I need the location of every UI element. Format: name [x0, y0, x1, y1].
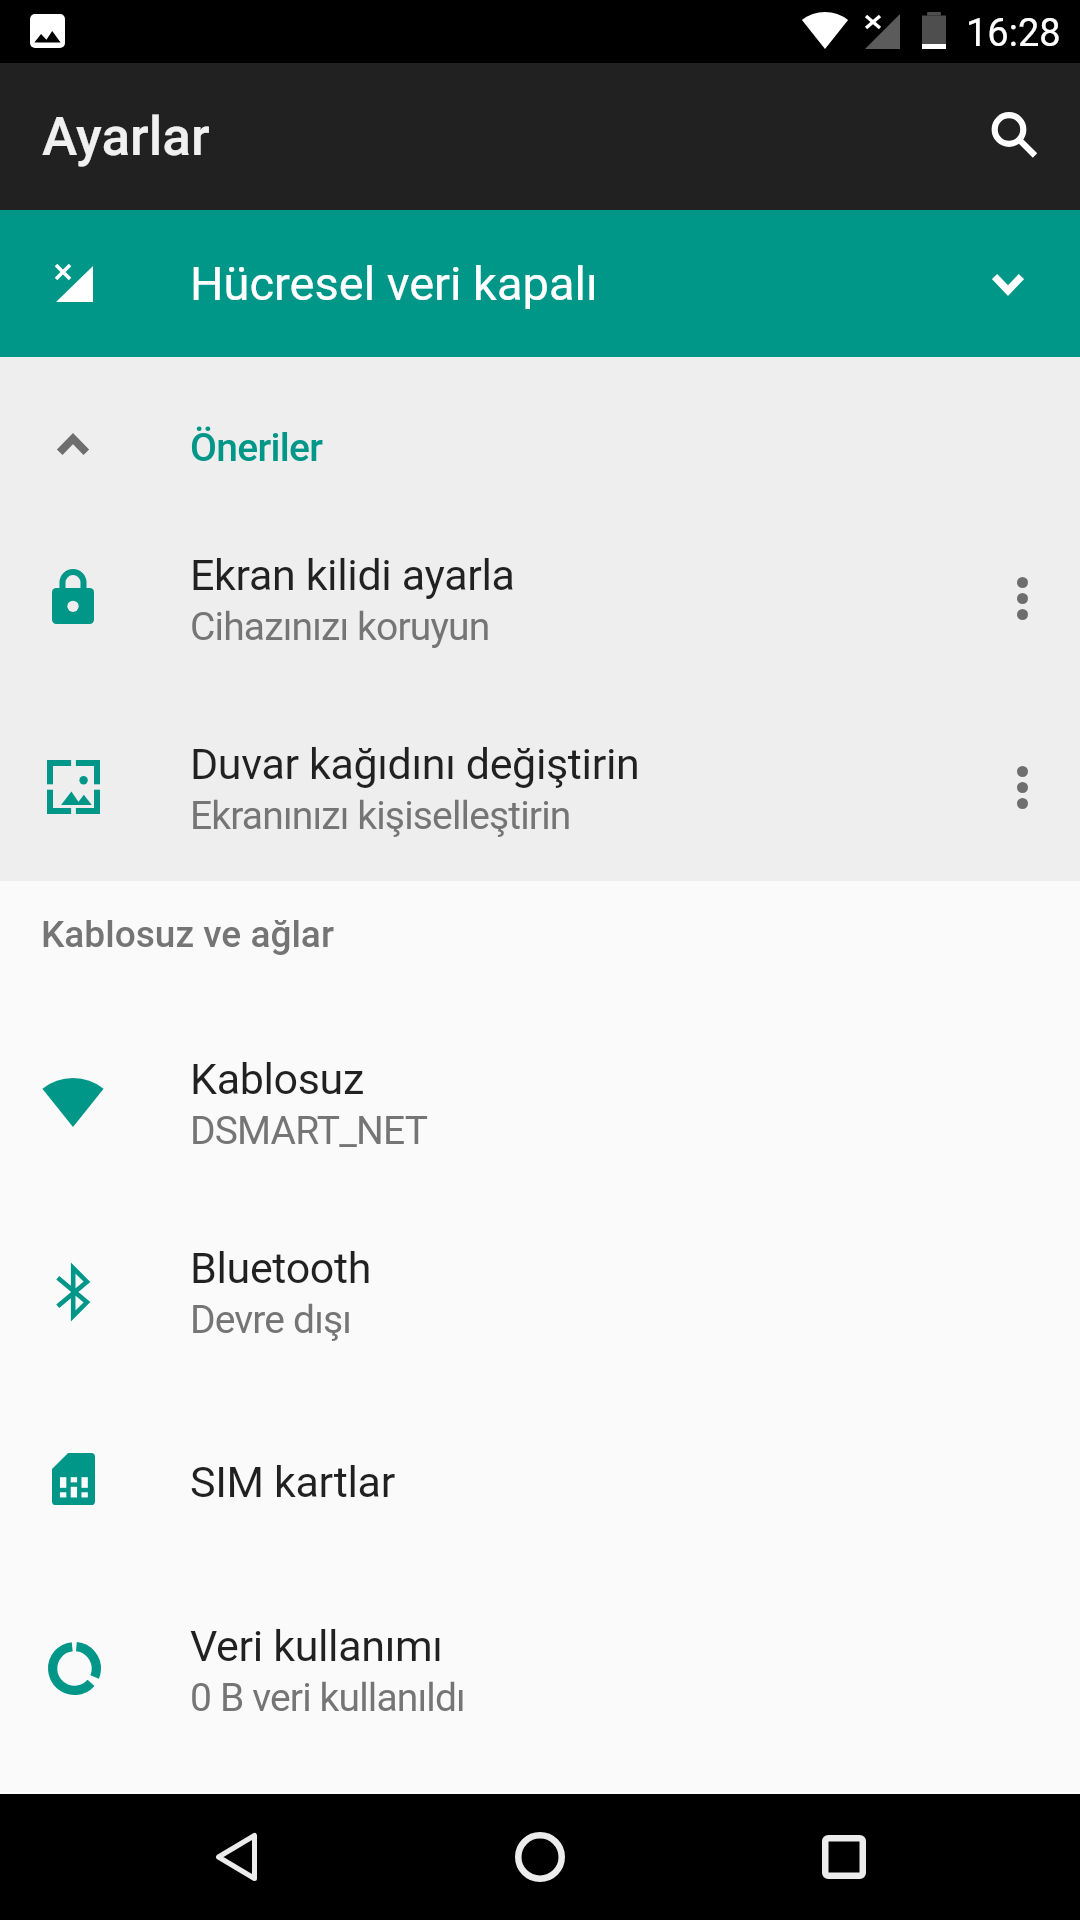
- staticText: SIM kartlar: [190, 1457, 395, 1507]
- button[interactable]: Hücresel veri kapalı: [0, 210, 1080, 357]
- button[interactable]: Duvar kağıdını değiştirin: [0, 694, 1080, 884]
- staticText: 16:28: [966, 11, 1061, 56]
- staticText: Duvar kağıdını değiştirin: [190, 739, 640, 789]
- button[interactable]: Expand: [972, 248, 1044, 320]
- staticText: Ayarlar: [42, 106, 210, 168]
- button[interactable]: Veri kullanımı: [0, 1576, 1080, 1766]
- staticText: Kablosuz ve ağlar: [41, 913, 334, 956]
- staticText: Ekran kilidi ayarla: [190, 550, 515, 600]
- staticText: 0 B veri kullanıldı: [190, 1675, 465, 1721]
- staticText: Cihazınızı koruyun: [190, 604, 490, 650]
- button[interactable]: Back: [181, 1802, 291, 1912]
- button[interactable]: Ekran kilidi ayarla: [0, 505, 1080, 695]
- staticText: Hücresel veri kapalı: [190, 256, 598, 311]
- staticText: DSMART_NET: [190, 1108, 428, 1154]
- staticText: Öneriler: [190, 425, 323, 471]
- staticText: Devre dışı: [190, 1297, 352, 1343]
- button[interactable]: Öneriler: [0, 357, 1080, 535]
- button[interactable]: Recent apps: [789, 1802, 899, 1912]
- button[interactable]: More options: [986, 753, 1058, 825]
- button[interactable]: Search: [960, 81, 1060, 181]
- button[interactable]: Home: [485, 1802, 595, 1912]
- staticText: Bluetooth: [190, 1243, 372, 1293]
- button[interactable]: Bluetooth: [0, 1198, 1080, 1388]
- staticText: Veri kullanımı: [190, 1621, 443, 1671]
- button[interactable]: More options: [986, 564, 1058, 636]
- staticText: Kablosuz: [190, 1054, 364, 1104]
- staticText: Ekranınızı kişiselleştirin: [190, 793, 571, 839]
- button[interactable]: Kablosuz: [0, 1009, 1080, 1199]
- button[interactable]: SIM kartlar: [0, 1387, 1080, 1577]
